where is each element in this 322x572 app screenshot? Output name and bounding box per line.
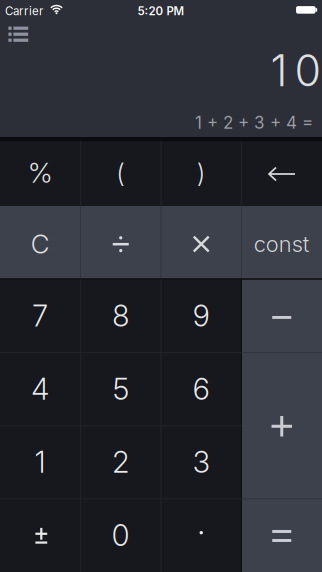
button[interactable]: const xyxy=(241,206,322,278)
button[interactable]: History xyxy=(6,25,30,43)
staticText: 3 xyxy=(193,445,210,480)
staticText: 10 xyxy=(270,44,321,96)
staticText: ) xyxy=(197,157,206,188)
button[interactable]: Divide xyxy=(80,206,161,278)
button[interactable]: 2 xyxy=(80,426,161,499)
button[interactable]: 8 xyxy=(80,279,161,353)
button[interactable]: C xyxy=(0,206,80,278)
staticText: 2 xyxy=(112,445,129,480)
button[interactable]: 9 xyxy=(161,279,241,353)
staticText: ( xyxy=(116,157,125,188)
staticText: % xyxy=(28,156,53,189)
button[interactable]: Backspace xyxy=(241,141,322,205)
button[interactable]: ) xyxy=(161,141,241,205)
button[interactable]: Decimal point xyxy=(161,499,241,572)
button[interactable]: Plus or minus xyxy=(0,499,80,572)
staticText: 8 xyxy=(112,298,129,334)
staticText: const xyxy=(254,231,310,257)
staticText: 6 xyxy=(193,372,210,407)
button[interactable]: 6 xyxy=(161,353,241,426)
button[interactable]: Equals xyxy=(241,499,322,572)
staticText: 5 xyxy=(113,372,129,407)
staticText: 5:20 PM xyxy=(137,4,184,18)
button[interactable]: 5 xyxy=(80,353,161,426)
staticText: 9 xyxy=(193,298,210,334)
button[interactable]: % xyxy=(0,141,80,205)
staticText: C xyxy=(31,228,50,260)
staticText: 7 xyxy=(32,298,48,334)
button[interactable]: 0 xyxy=(80,499,161,572)
staticText: Carrier xyxy=(5,4,43,18)
button[interactable]: Multiply xyxy=(161,206,241,278)
button[interactable]: 3 xyxy=(161,426,241,499)
staticText: 0 xyxy=(112,518,130,553)
staticText: 1 + 2 + 3 + 4 = xyxy=(195,112,313,133)
button[interactable]: Subtract xyxy=(241,279,322,353)
button[interactable]: 1 xyxy=(0,426,80,499)
staticText: 4 xyxy=(31,372,49,407)
button[interactable]: ( xyxy=(80,141,161,205)
button[interactable]: Add xyxy=(241,353,322,499)
button[interactable]: 4 xyxy=(0,353,80,426)
staticText: 1 xyxy=(35,445,46,480)
button[interactable]: 7 xyxy=(0,279,80,353)
